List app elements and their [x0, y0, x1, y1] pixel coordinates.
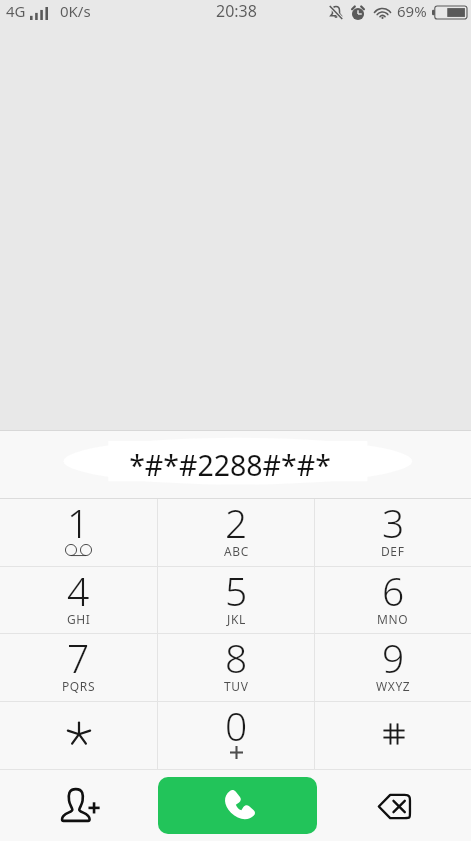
staticText: WXYZ [376, 678, 411, 694]
staticText: DEF [381, 543, 405, 559]
button[interactable]: 4 [0, 567, 157, 633]
button[interactable]: 7 [0, 634, 157, 701]
staticText: MNO [377, 611, 409, 627]
button[interactable]: 9 [315, 634, 471, 701]
staticText: TUV [224, 678, 249, 694]
staticText: 5 [225, 564, 248, 617]
button[interactable]: 8 [158, 634, 314, 701]
button[interactable] [315, 702, 471, 769]
staticText: 8 [225, 631, 248, 684]
button[interactable]: Add contact [0, 770, 158, 841]
button[interactable]: 5 [158, 567, 314, 633]
staticText: 69% [397, 1, 427, 21]
staticText: 6 [382, 564, 405, 617]
button[interactable]: Delete [317, 770, 471, 841]
button[interactable]: 3 [315, 499, 471, 566]
staticText: 9 [382, 631, 405, 684]
button[interactable]: Call [158, 777, 317, 834]
staticText: *#*#2288#*#* [129, 446, 331, 485]
staticText: 1 [67, 496, 90, 549]
staticText: ABC [224, 543, 249, 559]
staticText: 0K/s [60, 1, 91, 21]
staticText: 7 [67, 631, 90, 684]
staticText: GHI [67, 611, 91, 627]
button[interactable]: 1 [0, 499, 157, 566]
staticText: 4 [67, 564, 90, 617]
staticText: 0 [225, 699, 248, 752]
staticText: 4G [6, 1, 26, 21]
staticText: 20:38 [216, 0, 257, 22]
staticText: JKL [227, 611, 246, 627]
staticText: PQRS [62, 678, 96, 694]
staticText: 2 [225, 496, 248, 549]
button[interactable]: 0 [158, 702, 314, 769]
button[interactable]: 2 [158, 499, 314, 566]
staticText: 3 [382, 496, 405, 549]
button[interactable] [0, 702, 157, 769]
button[interactable]: 6 [315, 567, 471, 633]
